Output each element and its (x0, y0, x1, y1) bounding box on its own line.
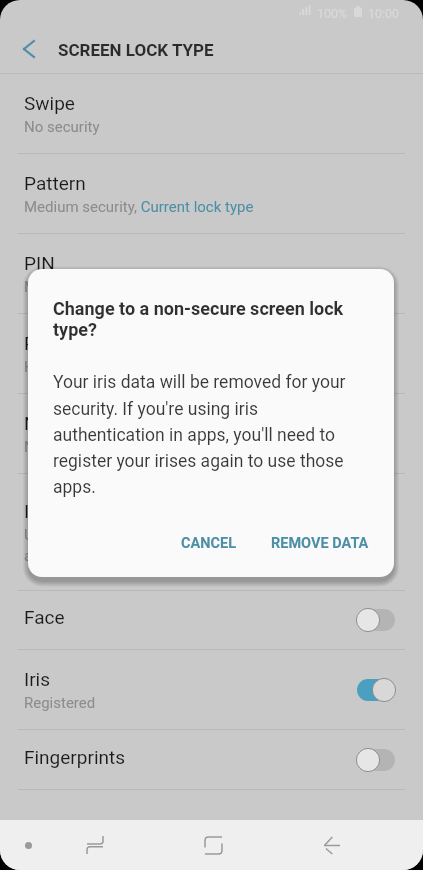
button[interactable]: Enabled (357, 679, 395, 701)
button[interactable]: Pattern (0, 154, 423, 233)
button[interactable]: Disabled (357, 749, 395, 771)
button[interactable]: Recent apps (71, 821, 119, 869)
button[interactable]: CANCEL (168, 526, 250, 561)
staticText: No security (24, 438, 100, 456)
staticText: Swipe (24, 92, 75, 114)
button[interactable]: Home (189, 821, 237, 869)
button[interactable]: Disabled (357, 609, 395, 631)
button[interactable]: Iris (0, 650, 423, 729)
staticText: Your iris data will be removed for your … (53, 372, 369, 497)
staticText: CANCEL (181, 535, 237, 552)
button[interactable]: More options (10, 827, 46, 863)
staticText: Pattern (24, 172, 86, 194)
button[interactable]: REMOVE DATA (258, 526, 382, 561)
staticText: Medium-high security (24, 278, 168, 296)
button[interactable]: Swipe (0, 74, 423, 153)
button[interactable]: Back (308, 821, 356, 869)
button[interactable]: PIN (0, 234, 423, 313)
staticText: Iris (24, 668, 51, 690)
button[interactable]: None (0, 394, 423, 473)
staticText: Change to a non-secure screen lock type? (53, 298, 369, 341)
staticText: REMOVE DATA (271, 535, 369, 552)
staticText: Password (24, 332, 108, 354)
staticText: None (24, 412, 69, 434)
staticText: Used for screen lock and some apps (24, 526, 161, 564)
staticText: Registered (24, 694, 96, 712)
button[interactable]: Navigate up (0, 24, 57, 74)
staticText: Medium security, Current lock type (24, 198, 254, 216)
staticText: No security (24, 118, 100, 136)
staticText: PIN (24, 252, 55, 274)
staticText: 10:00 (368, 6, 400, 21)
staticText: SCREEN LOCK TYPE (58, 40, 214, 60)
staticText: Fingerprints (24, 746, 126, 768)
staticText: High security (24, 358, 112, 376)
staticText: Iris (24, 500, 51, 522)
staticText: Face (24, 606, 65, 628)
button[interactable]: Iris (0, 474, 423, 590)
button[interactable]: Password (0, 314, 423, 393)
button[interactable]: Face (0, 591, 423, 649)
button[interactable]: Fingerprints (0, 730, 423, 789)
staticText: 100% (317, 6, 348, 21)
